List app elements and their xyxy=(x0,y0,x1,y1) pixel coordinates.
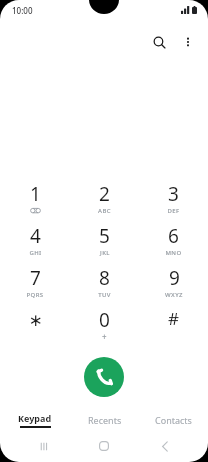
staticText: MNO xyxy=(165,249,182,257)
button[interactable]: 2 xyxy=(70,181,139,223)
staticText: Keypad xyxy=(18,412,52,424)
button[interactable]: Recent apps xyxy=(27,434,61,458)
button[interactable]: Contacts xyxy=(139,407,208,432)
staticText: Recents xyxy=(88,414,122,426)
staticText: 7 xyxy=(30,265,41,291)
button[interactable]: Search xyxy=(144,27,174,57)
button[interactable]: 8 xyxy=(70,265,139,307)
button[interactable]: 5 xyxy=(70,223,139,265)
button[interactable]: Home xyxy=(87,434,121,458)
button[interactable]: 1 xyxy=(0,181,70,223)
staticText: 0 xyxy=(99,307,110,333)
button[interactable]: 7 xyxy=(0,265,70,307)
staticText: + xyxy=(102,331,107,342)
staticText: 6 xyxy=(168,223,179,249)
button[interactable]: 9 xyxy=(139,265,208,307)
staticText: 10:00 xyxy=(12,5,33,16)
button[interactable]: Back xyxy=(148,434,182,458)
staticText: DEF xyxy=(167,207,180,215)
button[interactable]: 0 xyxy=(70,307,139,349)
button[interactable]: More options xyxy=(174,28,202,56)
staticText: ABC xyxy=(98,207,111,215)
button[interactable]: 4 xyxy=(0,223,70,265)
staticText: 8 xyxy=(99,265,110,291)
button[interactable]: 3 xyxy=(139,181,208,223)
staticText: JKL xyxy=(100,249,110,257)
button[interactable]: Recents xyxy=(70,407,139,432)
staticText: TUV xyxy=(98,291,111,299)
staticText: PQRS xyxy=(26,291,44,299)
staticText: 1 xyxy=(30,181,41,207)
staticText: 3 xyxy=(168,181,179,207)
button[interactable]: ∗ xyxy=(0,307,70,349)
staticText: # xyxy=(168,307,179,330)
staticText: WXYZ xyxy=(165,291,183,299)
staticText: 2 xyxy=(99,181,110,207)
button[interactable]: # xyxy=(139,307,208,349)
staticText: 4 xyxy=(30,223,41,249)
staticText: ∗ xyxy=(28,310,43,330)
button[interactable]: 6 xyxy=(139,223,208,265)
staticText: GHI xyxy=(29,249,42,257)
staticText: Contacts xyxy=(155,414,192,426)
button[interactable]: Call xyxy=(84,357,124,397)
staticText: 5 xyxy=(99,223,110,249)
button[interactable]: Keypad xyxy=(0,407,70,432)
staticText: 9 xyxy=(169,265,180,291)
